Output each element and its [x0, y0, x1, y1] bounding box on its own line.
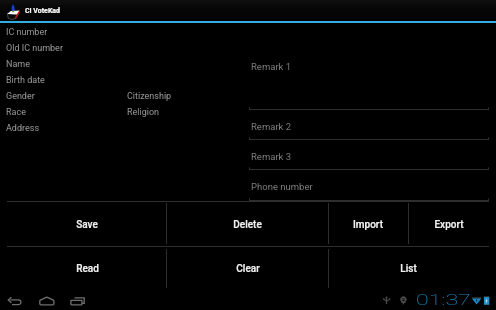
- button[interactable]: Import: [328, 203, 408, 247]
- button[interactable]: Recent apps: [65, 291, 91, 310]
- staticText: Address: [6, 123, 40, 134]
- staticText: 01:37: [416, 292, 471, 308]
- staticText: IC number: [6, 27, 48, 38]
- button[interactable]: Remark 1: [249, 58, 489, 111]
- button[interactable]: Clock 01:37: [416, 293, 447, 308]
- staticText: Religion: [127, 107, 160, 118]
- staticText: Import: [353, 219, 383, 231]
- other: USB connected: [380, 294, 392, 306]
- button[interactable]: Read: [7, 247, 167, 291]
- button[interactable]: List: [328, 247, 489, 291]
- button[interactable]: Back: [2, 291, 28, 310]
- staticText: Save: [76, 219, 98, 231]
- staticText: Birth date: [6, 75, 45, 86]
- staticText: Name: [6, 59, 30, 70]
- other: Wi-Fi: [471, 296, 483, 306]
- other: Battery: [483, 295, 491, 306]
- button[interactable]: Save: [7, 203, 167, 247]
- button[interactable]: Clear: [167, 247, 328, 291]
- staticText: Delete: [233, 219, 262, 231]
- button[interactable]: Home: [34, 291, 60, 310]
- staticText: Export: [434, 219, 464, 231]
- staticText: Clear: [236, 263, 260, 275]
- staticText: Citizenship: [127, 91, 172, 102]
- staticText: Read: [76, 263, 99, 275]
- staticText: Remark 3: [251, 151, 292, 162]
- button[interactable]: Export: [408, 203, 489, 247]
- staticText: Remark 2: [251, 121, 292, 132]
- button[interactable]: Remark 3: [249, 148, 489, 171]
- staticText: Gender: [6, 91, 35, 102]
- staticText: Phone number: [251, 181, 313, 192]
- button[interactable]: Phone number: [249, 178, 489, 202]
- button[interactable]: Remark 2: [249, 118, 489, 141]
- staticText: Remark 1: [251, 61, 292, 72]
- other: Status: [398, 294, 410, 306]
- staticText: CI VoteKad: [25, 7, 61, 15]
- staticText: List: [400, 263, 417, 275]
- staticText: Race: [6, 107, 26, 118]
- button[interactable]: Delete: [167, 203, 328, 247]
- button[interactable]: CI VoteKad: [7, 0, 496, 21]
- staticText: Old IC number: [6, 43, 63, 54]
